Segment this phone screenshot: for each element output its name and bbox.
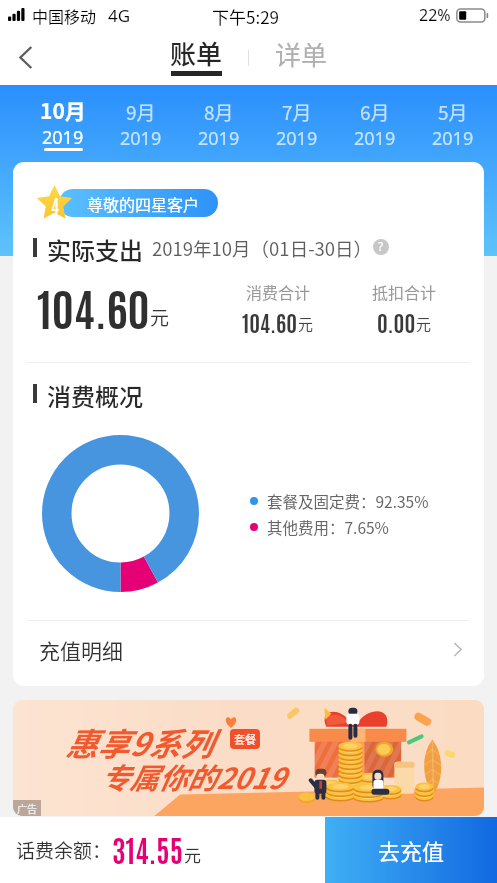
staticText: 0.00 [377, 308, 416, 336]
staticText: 4 [51, 192, 59, 217]
staticText: 元 [416, 313, 432, 335]
staticText: 10月 [40, 95, 86, 125]
staticText: 2019年10月（01日-30日） [152, 235, 373, 262]
staticText: 其他费用：7.65% [267, 516, 389, 538]
staticText: 104.60 [37, 277, 150, 335]
button[interactable]: 详单 [270, 30, 332, 85]
staticText: ? [378, 239, 384, 254]
button[interactable]: 账单 [162, 30, 230, 85]
button[interactable]: 惠享9系列 [13, 700, 484, 816]
staticText: 5月 [438, 98, 468, 126]
staticText: 中国移动 [32, 4, 97, 27]
staticText: 下午5:29 [212, 4, 280, 29]
staticText: 账单 [170, 34, 223, 72]
staticText: 详单 [275, 35, 328, 73]
button[interactable]: 去充值 [325, 817, 497, 883]
staticText: 元 [184, 842, 201, 867]
staticText: 元 [150, 303, 170, 331]
button[interactable]: Back [0, 30, 52, 85]
staticText: 2019 [120, 126, 162, 151]
button[interactable]: 7月 [258, 85, 336, 155]
staticText: 2019 [432, 126, 474, 151]
staticText: 抵扣合计 [372, 280, 437, 303]
staticText: 314.55 [112, 831, 184, 869]
staticText: 元 [298, 313, 314, 335]
staticText: 2019 [276, 126, 318, 151]
staticText: 充值明细 [39, 635, 123, 665]
staticText: 8月 [204, 98, 234, 126]
staticText: 7月 [282, 98, 312, 126]
staticText: 广告 [17, 801, 37, 815]
staticText: 104.60 [242, 308, 298, 336]
button[interactable]: 6月 [336, 85, 414, 155]
staticText: 消费概况 [47, 378, 143, 408]
staticText: 惠享9系列 [65, 719, 212, 765]
button[interactable]: 10月 [24, 85, 102, 155]
button[interactable]: 充值明细 [13, 617, 484, 682]
staticText: 2019 [354, 126, 396, 151]
staticText: 9月 [126, 98, 156, 126]
staticText: 6月 [360, 98, 390, 126]
staticText: 消费合计 [246, 280, 311, 303]
staticText: 套餐 [234, 731, 256, 747]
staticText: 22% [419, 4, 451, 26]
button[interactable]: 5月 [414, 85, 492, 155]
staticText: 套餐及固定费：92.35% [267, 490, 429, 512]
button[interactable]: 8月 [180, 85, 258, 155]
staticText: 去充值 [378, 834, 445, 866]
button[interactable]: 9月 [102, 85, 180, 155]
staticText: 实际支出 [47, 232, 143, 262]
staticText: 2019 [198, 126, 240, 151]
staticText: 2019 [42, 125, 84, 150]
button[interactable]: Help [373, 239, 389, 255]
staticText: 专属你的2019 [100, 755, 285, 797]
button[interactable]: 尊敬的四星客户 [59, 189, 218, 217]
staticText: 4G [108, 4, 131, 27]
staticText: 话费余额： [16, 836, 112, 864]
staticText: 尊敬的四星客户 [87, 192, 200, 215]
